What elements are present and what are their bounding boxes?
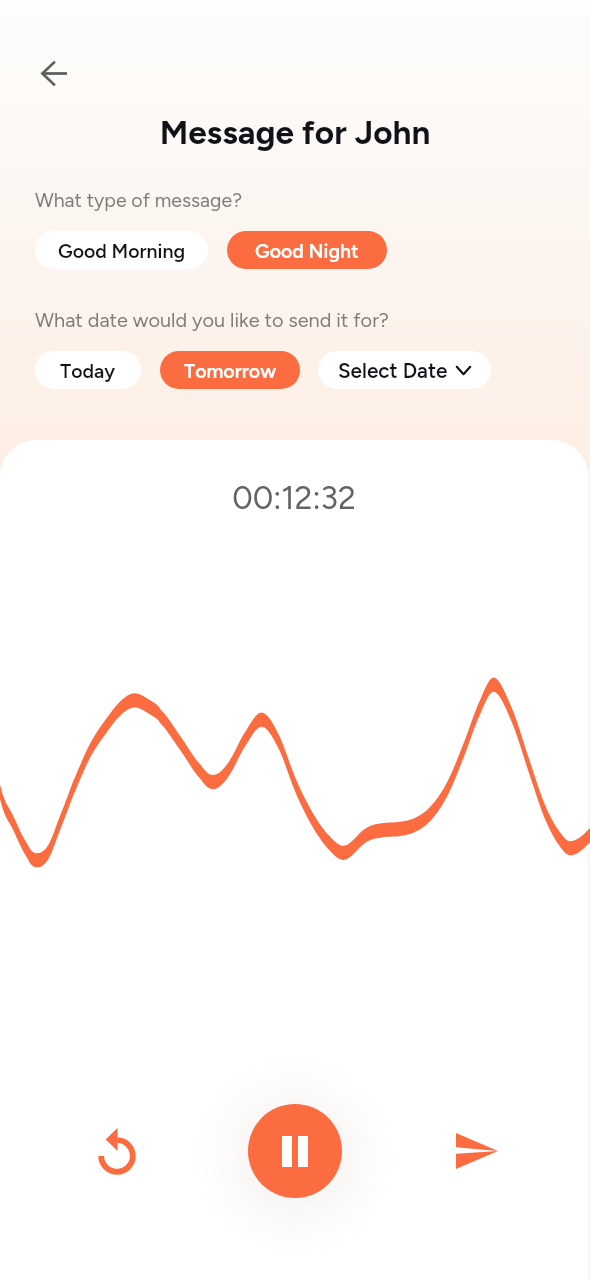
button[interactable]: Send <box>437 1111 517 1191</box>
button[interactable]: Select Date <box>318 351 491 389</box>
staticText: Message for John <box>0 112 590 152</box>
button[interactable]: Good Morning <box>35 231 208 269</box>
staticText: Today <box>60 359 116 382</box>
staticText: Good Morning <box>58 239 186 262</box>
staticText: 00:12:32 <box>0 479 588 517</box>
button[interactable]: Replay <box>92 1131 142 1181</box>
button[interactable]: Back <box>32 51 76 95</box>
button[interactable]: Pause <box>248 1104 342 1198</box>
staticText: What type of message? <box>35 188 242 211</box>
button[interactable]: Today <box>35 351 141 389</box>
staticText: Good Night <box>255 239 359 262</box>
staticText: Select Date <box>338 358 448 383</box>
button[interactable]: Good Night <box>227 231 387 269</box>
staticText: Tomorrow <box>184 359 277 382</box>
staticText: What date would you like to send it for? <box>35 308 389 332</box>
button[interactable]: Tomorrow <box>160 351 300 389</box>
